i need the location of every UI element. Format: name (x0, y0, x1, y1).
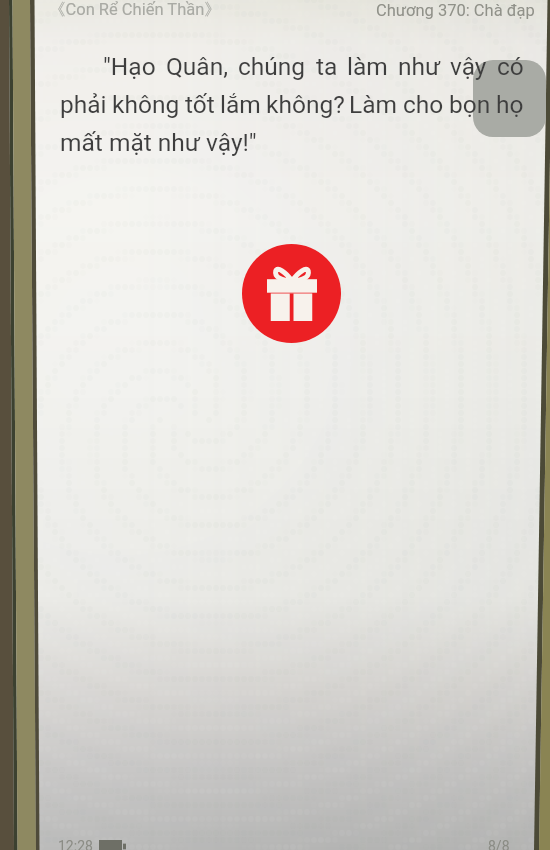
button[interactable]: Gift (242, 244, 341, 343)
staticText: lắm (220, 90, 261, 119)
staticText: 8/8 (488, 838, 510, 850)
staticText: Làm (349, 90, 398, 119)
staticText: Quân, (166, 52, 229, 81)
staticText: họ (496, 90, 524, 119)
staticText: không? (266, 90, 345, 119)
button[interactable]: Chương 370: Chà đạp (376, 1, 535, 20)
staticText: 12:28 (58, 838, 93, 850)
button[interactable]: Floating menu (473, 60, 546, 137)
staticText: vậy (450, 52, 487, 81)
staticText: bọn (449, 90, 491, 119)
staticText: chúng (238, 52, 306, 81)
staticText: làm (347, 52, 388, 81)
staticText: "Hạo (103, 52, 156, 81)
button[interactable]: 《Con Rể Chiến Thần》 (49, 0, 221, 20)
staticText: cho (403, 90, 444, 119)
staticText: có (497, 52, 524, 81)
staticText: phải (60, 90, 107, 119)
staticText: không (112, 90, 180, 119)
staticText: mất mặt như vậy!" (60, 128, 257, 157)
staticText: như (398, 52, 441, 81)
staticText: ta (316, 52, 338, 81)
staticText: tốt (185, 90, 215, 119)
